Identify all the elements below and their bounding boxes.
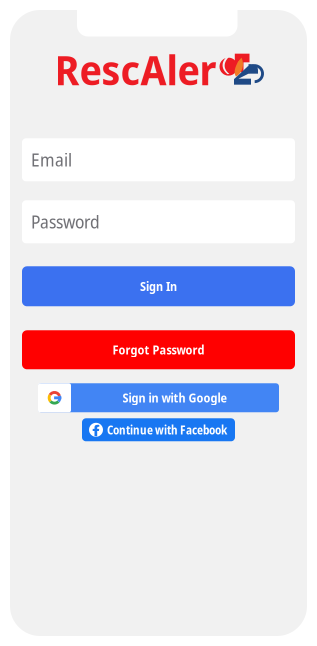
- staticText: Sign in with Google: [122, 390, 227, 406]
- button[interactable]: Sign in with Google: [38, 383, 279, 412]
- button[interactable]: Continue with Facebook: [82, 418, 235, 441]
- staticText: Password: [31, 210, 100, 234]
- button[interactable]: Sign In: [22, 266, 295, 306]
- button[interactable]: Forgot Password: [22, 330, 295, 369]
- staticText: Forgot Password: [112, 342, 204, 358]
- staticText: Email: [31, 148, 72, 172]
- staticText: Continue with Facebook: [107, 422, 227, 438]
- staticText: Sign In: [140, 278, 177, 294]
- staticText: RescAler: [54, 41, 216, 97]
